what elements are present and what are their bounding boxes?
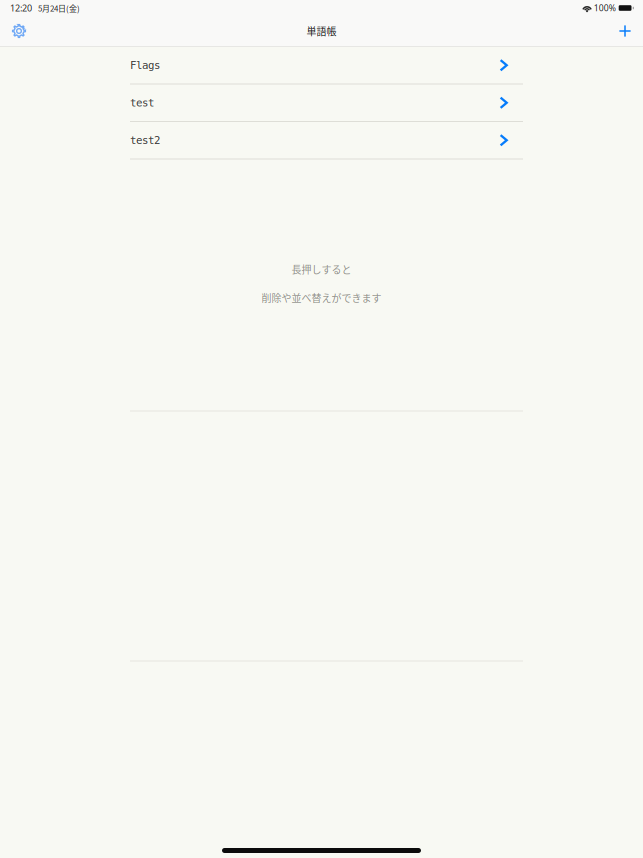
staticText: 12:20: [10, 2, 32, 14]
staticText: 単語帳: [306, 24, 336, 38]
staticText: 長押しすると: [291, 262, 351, 276]
staticText: Flags: [130, 59, 160, 71]
button[interactable]: Add: [611, 17, 639, 45]
button[interactable]: test: [130, 84, 523, 122]
staticText: 5月24日(金): [38, 2, 80, 14]
staticText: 100%: [594, 2, 616, 14]
staticText: test: [130, 96, 154, 109]
button[interactable]: Settings: [5, 17, 33, 45]
staticText: 削除や並べ替えができます: [261, 290, 381, 305]
button[interactable]: Flags: [130, 47, 523, 84]
staticText: test2: [130, 134, 160, 146]
button[interactable]: test2: [130, 122, 523, 159]
